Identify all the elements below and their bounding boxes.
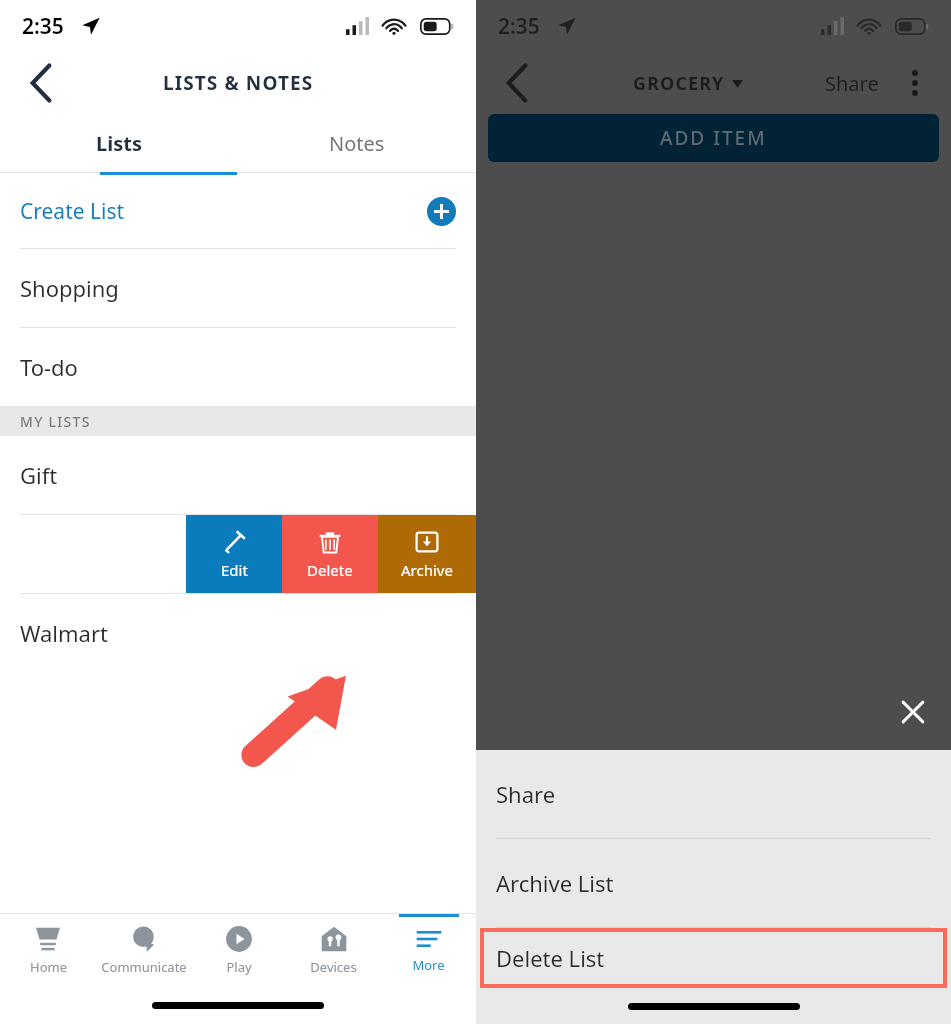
- button[interactable]: Communicate: [96, 914, 191, 986]
- staticText: 2:35: [22, 12, 64, 41]
- button[interactable]: Delete: [282, 515, 378, 593]
- button[interactable]: Home: [0, 914, 96, 986]
- staticText: Lists: [96, 130, 142, 157]
- staticText: Devices: [310, 958, 357, 976]
- button[interactable]: Gift: [0, 436, 476, 514]
- button[interactable]: Play: [191, 914, 286, 986]
- button[interactable]: Edit: [186, 515, 282, 593]
- staticText: ADD ITEM: [660, 125, 767, 151]
- staticText: More: [412, 956, 445, 974]
- button[interactable]: Create List: [0, 175, 476, 248]
- staticText: Edit: [221, 560, 248, 580]
- button[interactable]: Notes: [238, 114, 476, 172]
- staticText: Walmart: [20, 618, 108, 648]
- staticText: Archive List: [496, 868, 614, 898]
- button[interactable]: More options: [893, 61, 937, 105]
- staticText: Share: [496, 779, 556, 809]
- staticText: MY LISTS: [20, 412, 91, 431]
- staticText: 2:35: [498, 12, 540, 41]
- button[interactable]: Archive List: [476, 839, 951, 927]
- button[interactable]: Lists: [0, 114, 238, 172]
- button[interactable]: Archive: [378, 515, 476, 593]
- staticText: Play: [226, 958, 252, 976]
- staticText: Create List: [20, 197, 125, 226]
- staticText: To-do: [20, 352, 78, 382]
- button[interactable]: More: [381, 914, 476, 986]
- staticText: Delete List: [496, 943, 605, 973]
- staticText: Archive: [401, 560, 453, 580]
- staticText: Shopping: [20, 273, 119, 303]
- staticText: LISTS & NOTES: [163, 70, 314, 96]
- button[interactable]: ADD ITEM: [488, 114, 939, 162]
- staticText: GROCERY: [633, 71, 725, 96]
- button[interactable]: Devices: [286, 914, 381, 986]
- button[interactable]: Walmart: [0, 594, 476, 672]
- staticText: Delete: [307, 560, 353, 580]
- staticText: Notes: [329, 130, 385, 157]
- staticText: Communicate: [101, 958, 187, 976]
- button[interactable]: GROCERY: [633, 71, 743, 96]
- button[interactable]: Share: [476, 750, 951, 838]
- button[interactable]: Back: [18, 60, 64, 106]
- button[interactable]: Close: [889, 688, 937, 736]
- button[interactable]: Share: [825, 70, 879, 97]
- staticText: Gift: [20, 460, 58, 490]
- staticText: Home: [30, 958, 67, 976]
- button[interactable]: Delete List: [480, 928, 947, 988]
- button[interactable]: Shopping: [0, 249, 476, 327]
- button[interactable]: To-do: [0, 328, 476, 406]
- button[interactable]: Back: [494, 60, 540, 106]
